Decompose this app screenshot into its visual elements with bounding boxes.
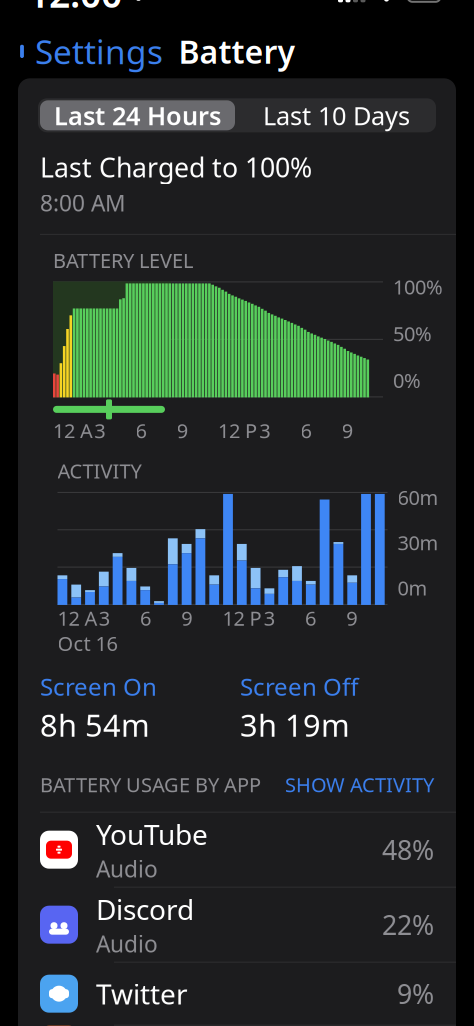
staticText: 6 <box>135 417 146 444</box>
staticText: 48% <box>382 832 434 867</box>
staticText: 9 <box>346 605 357 631</box>
button[interactable]: SHOW ACTIVITY <box>285 767 434 802</box>
staticText: ACTIVITY <box>57 457 141 484</box>
staticText: 9 <box>342 417 353 444</box>
staticText: Audio <box>96 854 158 884</box>
staticText: Last 10 Days <box>263 98 410 132</box>
staticText: 3 <box>259 417 270 444</box>
staticText: BATTERY LEVEL <box>53 247 193 273</box>
staticText: 0m <box>397 574 427 601</box>
staticText: 9 <box>181 605 192 631</box>
staticText: BATTERY USAGE BY APP <box>40 771 261 798</box>
staticText: 22% <box>382 907 434 942</box>
staticText: 100% <box>393 273 443 300</box>
staticText: Audio <box>96 929 158 959</box>
button[interactable]: Discord <box>18 888 456 962</box>
button[interactable]: Settings <box>0 23 163 79</box>
staticText: 6 <box>305 605 316 631</box>
staticText: YouTube <box>96 815 208 853</box>
staticText: 50% <box>393 320 432 347</box>
staticText: Screen Off <box>240 670 359 702</box>
staticText: 12 P <box>222 605 261 631</box>
staticText: Battery <box>178 30 295 73</box>
staticText: 12 A <box>57 605 97 631</box>
staticText: 6 <box>300 417 311 444</box>
staticText: 9% <box>397 976 434 1011</box>
button[interactable]: Twitter <box>18 963 456 1025</box>
staticText: 30m <box>397 529 438 556</box>
staticText: 3 <box>264 605 275 631</box>
staticText: Screen On <box>40 670 157 702</box>
staticText: Settings <box>35 29 163 73</box>
staticText: 9 <box>177 417 188 444</box>
staticText: 12 P <box>218 417 257 444</box>
staticText: 8:00 AM <box>40 188 126 218</box>
staticText: Discord <box>96 890 194 928</box>
staticText: 12:00 <box>28 0 122 18</box>
staticText: 8h 54m <box>40 704 150 745</box>
staticText: 3 <box>99 605 110 631</box>
staticText: 60m <box>397 484 438 511</box>
staticText: 3 <box>94 417 105 444</box>
staticText: 12 A <box>53 417 93 444</box>
staticText: 6 <box>140 605 151 631</box>
button[interactable]: Last 10 Days <box>237 98 436 132</box>
staticText: Last Charged to 100% <box>40 149 312 185</box>
button[interactable]: YouTube <box>18 813 456 887</box>
staticText: Twitter <box>96 975 188 1012</box>
staticText: SHOW ACTIVITY <box>285 771 434 798</box>
button[interactable]: Last 24 Hours <box>38 98 237 132</box>
staticText: 0% <box>393 367 421 393</box>
staticText: 3h 19m <box>240 704 350 745</box>
staticText: Oct 16 <box>57 630 117 657</box>
staticText: Last 24 Hours <box>54 98 221 132</box>
